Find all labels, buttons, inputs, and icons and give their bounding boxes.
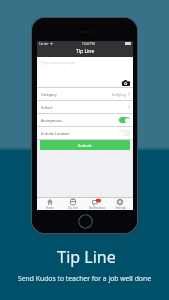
staticText: Tip Line [2, 246, 169, 268]
button[interactable]: Notifications [86, 199, 108, 210]
staticText: Carrier [39, 42, 49, 46]
staticText: Home [46, 206, 54, 210]
staticText: School [41, 105, 53, 110]
button[interactable]: School [37, 101, 133, 113]
staticText: Notifications [89, 206, 105, 210]
staticText: Send Kudos to teacher for a job well don… [0, 274, 169, 283]
staticText: 10:43 PM [82, 42, 95, 46]
button[interactable]: Add photo [122, 80, 130, 86]
staticText: Tip Line [76, 48, 95, 55]
button[interactable]: Settings [109, 199, 131, 210]
button[interactable]: Anonymous [37, 114, 133, 126]
staticText: Type your message [41, 60, 75, 65]
staticText: Include Location [41, 131, 70, 136]
button[interactable]: Home [39, 199, 61, 210]
staticText: Bullying [112, 92, 126, 97]
button[interactable]: Submit [40, 140, 130, 150]
staticText: Submit [78, 143, 92, 148]
button[interactable]: Category [37, 88, 133, 100]
staticText: Settings [115, 206, 126, 210]
staticText: Anonymous [41, 118, 62, 123]
button[interactable]: Include Location [37, 127, 133, 139]
staticText: Tip Line [68, 206, 78, 210]
button[interactable]: Tip Line [62, 199, 84, 210]
staticText: Category [41, 92, 57, 97]
